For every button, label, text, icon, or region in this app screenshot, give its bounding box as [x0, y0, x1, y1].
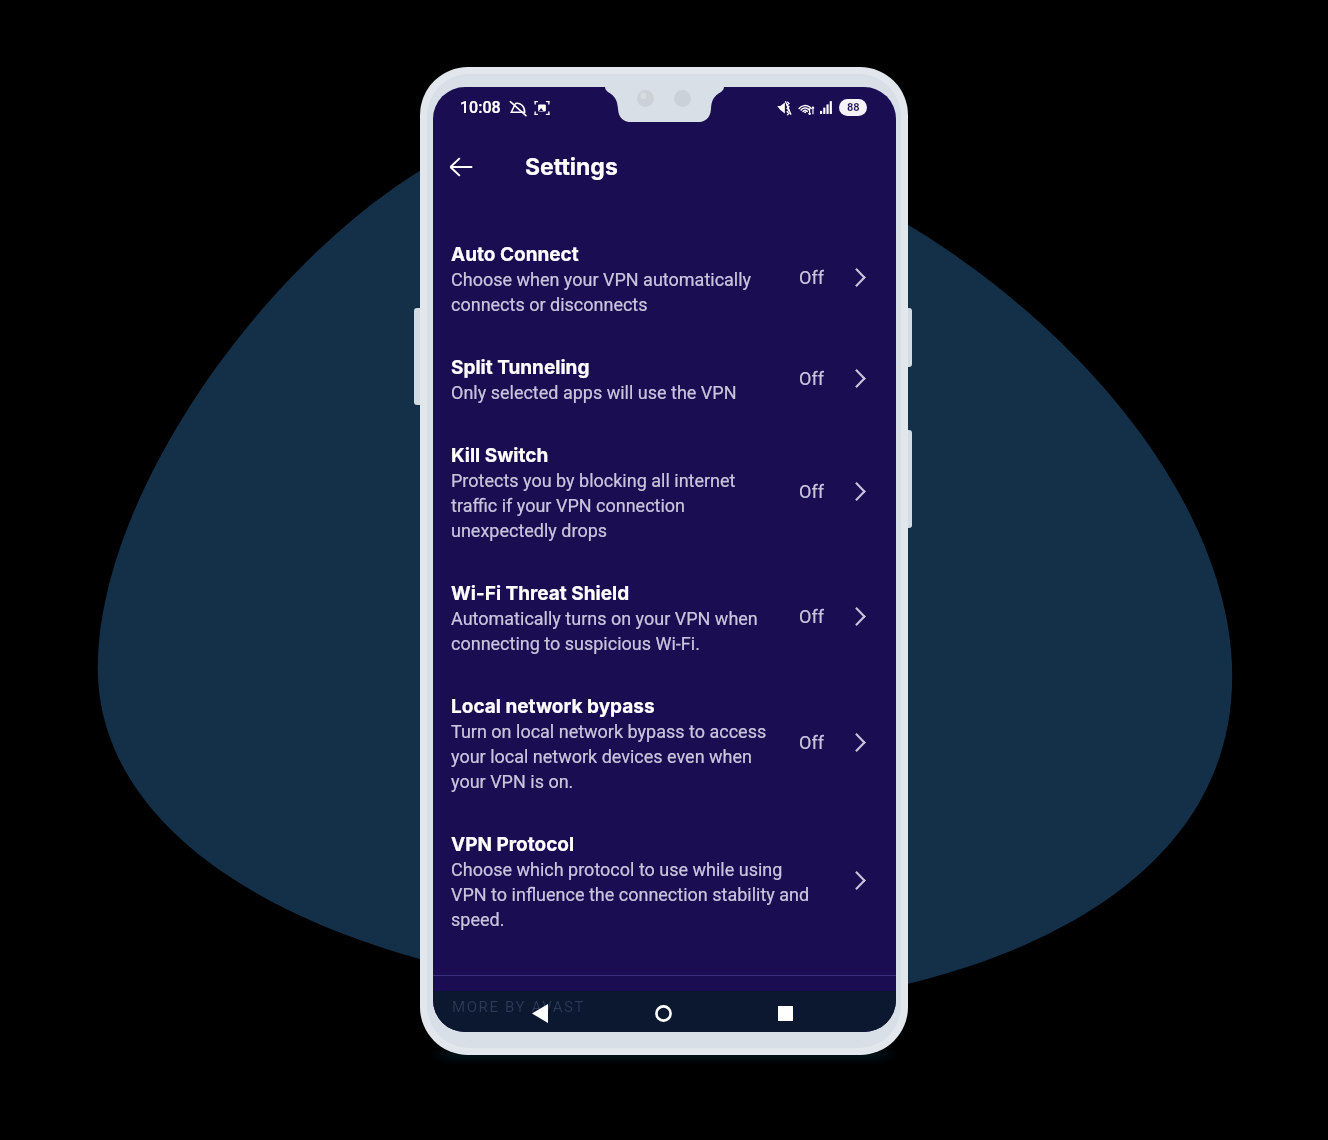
- staticText: Off: [799, 732, 824, 753]
- button[interactable]: Kill Switch: [433, 440, 896, 542]
- button[interactable]: Local network bypass: [433, 691, 896, 793]
- staticText: 10:08: [460, 98, 501, 117]
- staticText: Turn on local network bypass to access y…: [451, 718, 776, 793]
- staticText: VPN Protocol: [451, 829, 575, 856]
- button[interactable]: Auto Connect: [433, 239, 896, 316]
- button[interactable]: Split Tunneling: [433, 352, 896, 404]
- button[interactable]: Back: [518, 993, 562, 1032]
- staticText: Settings: [525, 153, 618, 181]
- staticText: Protects you by blocking all internet tr…: [451, 467, 776, 542]
- button[interactable]: Wi-Fi Threat Shield: [433, 578, 896, 655]
- staticText: 88: [847, 101, 860, 114]
- staticText: Off: [799, 606, 824, 627]
- button[interactable]: VPN Protocol: [433, 829, 896, 931]
- staticText: Off: [799, 267, 824, 288]
- staticText: Off: [799, 368, 824, 389]
- staticText: Choose when your VPN automatically conne…: [451, 266, 776, 316]
- staticText: MORE BY AVAST: [452, 998, 586, 1016]
- button[interactable]: Home: [641, 993, 685, 1032]
- staticText: Kill Switch: [451, 440, 549, 467]
- staticText: Off: [799, 481, 824, 502]
- staticText: Automatically turns on your VPN when con…: [451, 605, 776, 655]
- staticText: Local network bypass: [451, 691, 655, 718]
- staticText: Choose which protocol to use while using…: [451, 856, 815, 931]
- button[interactable]: Back: [439, 145, 483, 189]
- button[interactable]: Recent apps: [763, 993, 807, 1032]
- staticText: Auto Connect: [451, 239, 579, 266]
- staticText: Split Tunneling: [451, 352, 590, 379]
- staticText: Only selected apps will use the VPN: [451, 379, 737, 404]
- staticText: Wi-Fi Threat Shield: [451, 578, 630, 605]
